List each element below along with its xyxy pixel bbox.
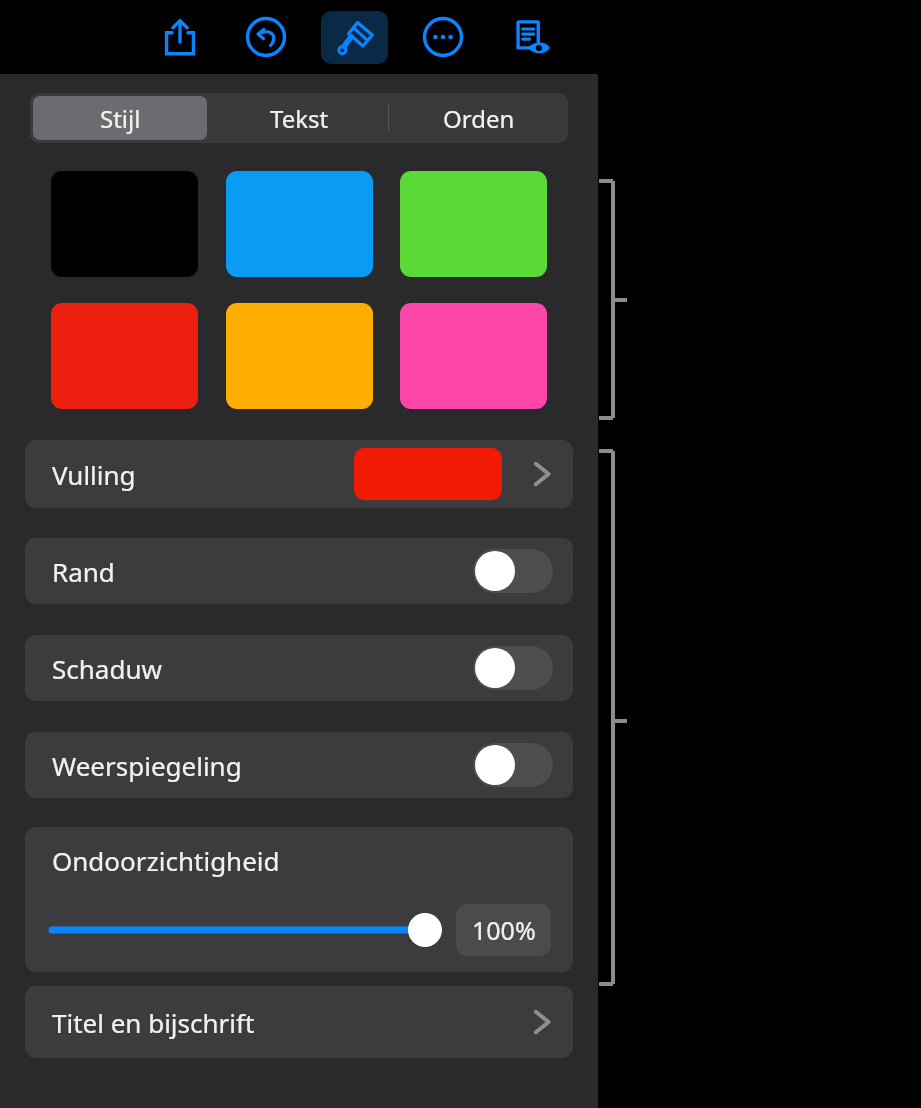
staticText: Rand — [52, 554, 115, 589]
staticText: Ondoorzichtigheid — [52, 843, 280, 878]
button[interactable]: Weerspiegeling — [25, 732, 573, 798]
button[interactable]: Stijl 3 — [400, 171, 547, 277]
button[interactable]: Stijl 2 — [226, 171, 373, 277]
button[interactable]: Herstel — [239, 10, 293, 64]
button[interactable]: Rand aan/uit — [473, 549, 553, 593]
button[interactable]: Stijl 5 — [226, 303, 373, 409]
staticText: Orden — [443, 102, 515, 135]
button[interactable]: Orden — [392, 96, 565, 140]
button[interactable]: Meer — [416, 10, 470, 64]
staticText: Schaduw — [52, 651, 162, 686]
button[interactable]: Titel en bijschrift — [25, 986, 573, 1058]
staticText: Titel en bijschrift — [52, 1005, 255, 1040]
button[interactable]: Stijl 6 — [400, 303, 547, 409]
button[interactable] — [52, 908, 442, 952]
button[interactable]: 100% — [456, 904, 551, 956]
staticText: Tekst — [270, 102, 329, 135]
button[interactable]: Documentopties — [502, 10, 556, 64]
button[interactable]: Rand — [25, 538, 573, 604]
button[interactable]: Tekst — [210, 93, 389, 143]
staticText: Stijl — [100, 102, 141, 135]
button[interactable]: Stijl — [33, 96, 207, 140]
staticText: Vulling — [52, 457, 136, 492]
button[interactable]: Weerspiegeling aan/uit — [473, 743, 553, 787]
staticText: 100% — [472, 913, 536, 947]
button[interactable]: Schaduw aan/uit — [473, 646, 553, 690]
button[interactable]: Opmaak — [321, 11, 388, 64]
button[interactable]: Stijl 4 — [51, 303, 198, 409]
staticText: Weerspiegeling — [52, 748, 242, 783]
button[interactable]: Deel — [153, 10, 207, 64]
button[interactable]: Vulling — [25, 440, 573, 508]
button[interactable]: Stijl 1 — [51, 171, 198, 277]
button[interactable]: Schaduw — [25, 635, 573, 701]
